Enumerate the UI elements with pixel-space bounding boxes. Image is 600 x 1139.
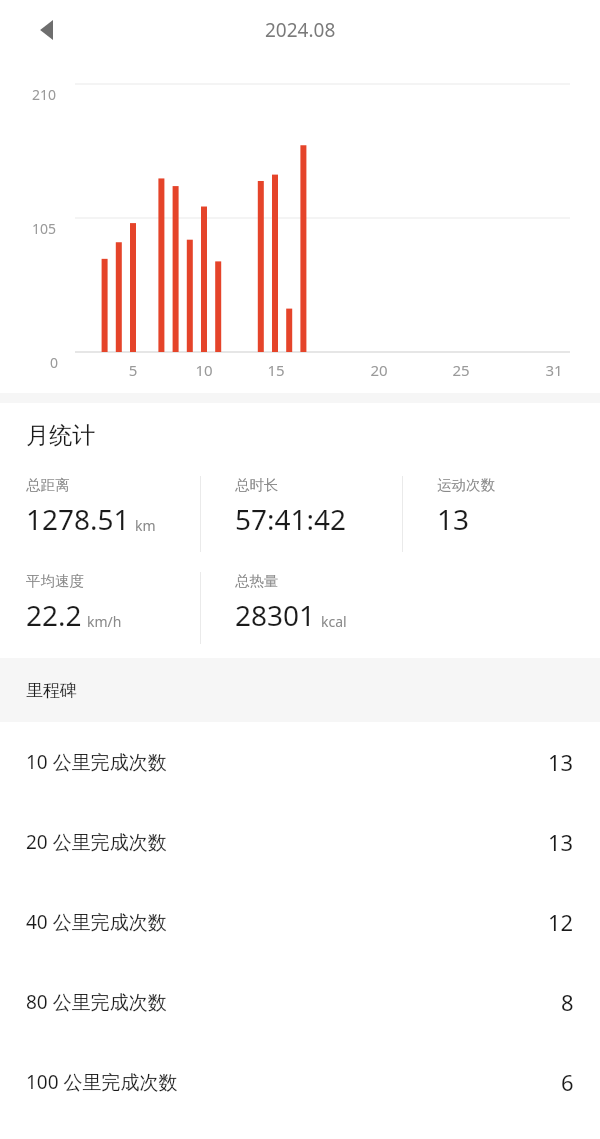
button[interactable]: 40 公里完成次数 [0, 882, 600, 962]
button[interactable]: 80 公里完成次数 [0, 962, 600, 1042]
staticText: 22.2 [26, 596, 82, 634]
staticText: 里程碑 [26, 680, 77, 701]
staticText: km [135, 516, 156, 535]
button[interactable]: 100 公里完成次数 [0, 1042, 600, 1122]
staticText: 40 公里完成次数 [26, 909, 548, 935]
staticText: 总热量 [235, 572, 279, 590]
staticText: 1278.51 [26, 500, 130, 538]
button[interactable]: 20 公里完成次数 [0, 802, 600, 882]
staticText: 28301 [235, 596, 316, 634]
staticText: 57:41:42 [235, 500, 347, 538]
staticText: 105 [32, 219, 57, 238]
staticText: 20 公里完成次数 [26, 829, 548, 855]
staticText: 210 [32, 85, 57, 104]
staticText: kcal [321, 612, 347, 631]
button[interactable]: Back [24, 8, 68, 52]
staticText: 总距离 [26, 476, 70, 494]
staticText: 8 [561, 987, 574, 1017]
staticText: 总时长 [235, 476, 279, 494]
staticText: 13 [437, 500, 470, 538]
staticText: 15 [260, 360, 292, 380]
staticText: 2024.08 [265, 17, 336, 43]
staticText: 13 [548, 827, 574, 857]
staticText: 10 公里完成次数 [26, 749, 548, 775]
staticText: 6 [561, 1067, 574, 1097]
staticText: 平均速度 [26, 572, 84, 590]
staticText: 25 [445, 360, 477, 380]
button[interactable]: 10 公里完成次数 [0, 722, 600, 802]
staticText: 12 [548, 907, 574, 937]
staticText: 31 [538, 360, 570, 380]
staticText: 13 [548, 747, 574, 777]
staticText: 0 [50, 353, 59, 372]
staticText: km/h [87, 612, 122, 631]
staticText: 20 [363, 360, 395, 380]
staticText: 5 [117, 360, 149, 380]
staticText: 运动次数 [437, 476, 495, 494]
staticText: 10 [188, 360, 220, 380]
staticText: 月统计 [26, 421, 95, 450]
staticText: 80 公里完成次数 [26, 989, 561, 1015]
staticText: 100 公里完成次数 [26, 1069, 561, 1095]
